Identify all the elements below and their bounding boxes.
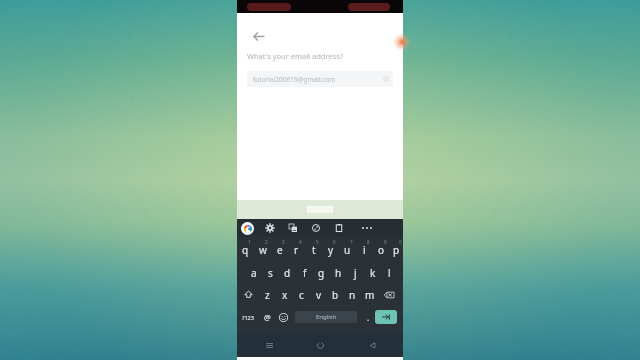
staticText: . — [367, 312, 370, 323]
button[interactable]: 5 — [305, 237, 322, 260]
staticText: s — [268, 266, 273, 280]
button[interactable]: 7 — [339, 237, 356, 260]
button[interactable]: s — [262, 260, 279, 283]
button[interactable]: 2 — [254, 237, 271, 260]
staticText: English — [316, 313, 337, 321]
staticText: b — [332, 288, 339, 302]
staticText: ?123 — [242, 314, 254, 321]
staticText: j — [354, 266, 357, 280]
button[interactable]: a — [245, 260, 262, 283]
staticText: m — [365, 288, 375, 302]
button[interactable]: @ — [259, 306, 275, 328]
button[interactable]: k — [364, 260, 381, 283]
staticText: r — [294, 243, 299, 257]
button[interactable]: ?123 — [237, 306, 259, 328]
staticText: @ — [264, 312, 271, 322]
button[interactable]: Backspace — [378, 283, 400, 306]
button[interactable]: v — [310, 283, 327, 306]
button[interactable]: j — [347, 260, 364, 283]
button[interactable]: b — [327, 283, 344, 306]
staticText: u — [344, 243, 351, 257]
staticText: 8 — [367, 239, 370, 245]
button[interactable]: Home — [300, 334, 340, 357]
button[interactable]: 8 — [356, 237, 373, 260]
button[interactable]: c — [293, 283, 310, 306]
button[interactable]: z — [259, 283, 276, 306]
button[interactable]: Translate — [281, 219, 304, 237]
staticText: z — [265, 288, 270, 302]
button[interactable]: Clear — [383, 76, 389, 82]
staticText: 3 — [282, 239, 285, 245]
button[interactable]: Enter — [375, 310, 397, 324]
staticText: 9 — [384, 239, 387, 245]
staticText: e — [277, 243, 283, 257]
button[interactable]: Google — [241, 222, 254, 235]
staticText: q — [242, 243, 249, 257]
button[interactable]: l — [381, 260, 398, 283]
staticText: d — [284, 266, 291, 280]
button[interactable]: 9 — [373, 237, 390, 260]
button[interactable]: n — [344, 283, 361, 306]
button[interactable]: 0 — [390, 237, 403, 260]
button[interactable]: 1 — [237, 237, 254, 260]
button[interactable]: d — [279, 260, 296, 283]
button[interactable]: 3 — [271, 237, 288, 260]
staticText: v — [316, 288, 322, 302]
staticText: x — [282, 288, 288, 302]
button[interactable]: 6 — [322, 237, 339, 260]
staticText: 7 — [350, 239, 353, 245]
button[interactable]: Emoji — [275, 306, 291, 328]
staticText: 0 — [399, 239, 402, 245]
staticText: i — [363, 243, 366, 257]
button[interactable]: . — [361, 306, 375, 328]
staticText: n — [349, 288, 356, 302]
button[interactable]: 4 — [288, 237, 305, 260]
staticText: 6 — [333, 239, 336, 245]
staticText: tutorial200619@gmail.com — [253, 75, 336, 84]
button[interactable]: Settings — [258, 219, 281, 237]
staticText: p — [393, 243, 400, 257]
staticText: 2 — [265, 239, 268, 245]
staticText: a — [251, 266, 257, 280]
button[interactable]: Clipboard — [327, 219, 350, 237]
button[interactable]: m — [361, 283, 378, 306]
button[interactable]: h — [330, 260, 347, 283]
staticText: k — [370, 266, 376, 280]
staticText: l — [388, 266, 391, 280]
staticText: c — [299, 288, 304, 302]
staticText: o — [378, 243, 385, 257]
staticText: What's your email address? — [247, 51, 344, 61]
staticText: w — [259, 243, 267, 257]
button[interactable]: Shift — [237, 283, 259, 306]
button[interactable]: x — [276, 283, 293, 306]
staticText: 1 — [248, 239, 251, 245]
staticText: f — [303, 266, 307, 280]
button[interactable]: Back — [352, 334, 392, 357]
staticText: g — [318, 266, 325, 280]
button[interactable]: More — [350, 219, 384, 237]
button[interactable]: Stickers — [304, 219, 327, 237]
button[interactable]: f — [296, 260, 313, 283]
button[interactable]: English — [295, 311, 357, 323]
button[interactable]: tutorial200619@gmail.com — [247, 71, 393, 87]
button[interactable]: g — [313, 260, 330, 283]
staticText: y — [328, 243, 334, 257]
staticText: 5 — [316, 239, 319, 245]
button[interactable]: Recents — [249, 334, 289, 357]
button[interactable]: Back — [247, 25, 269, 47]
staticText: h — [335, 266, 342, 280]
staticText: t — [312, 243, 316, 257]
staticText: 4 — [299, 239, 302, 245]
